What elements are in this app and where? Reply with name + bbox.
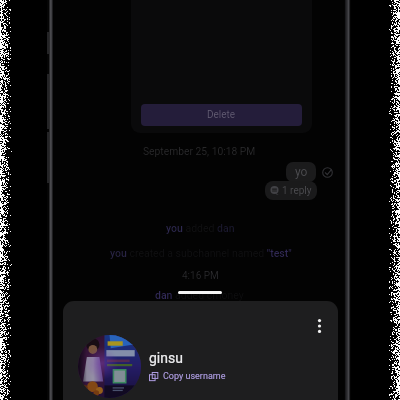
button[interactable]: More options — [308, 315, 330, 337]
staticText: Delete — [207, 109, 236, 121]
staticText: 1 reply — [282, 185, 312, 197]
button[interactable]: Delete — [141, 104, 302, 126]
staticText: dan added cmoney — [155, 289, 244, 301]
staticText: 4:16 PM — [182, 270, 219, 282]
staticText: you added dan — [166, 222, 235, 234]
button[interactable]: Sent — [322, 167, 333, 178]
button[interactable]: 1 reply — [265, 181, 317, 200]
staticText: you created a subchannel named "test" — [110, 247, 292, 259]
button[interactable]: yo — [286, 162, 316, 182]
staticText: ginsu — [149, 350, 183, 366]
button[interactable]: Copy username — [149, 371, 226, 382]
staticText: Copy username — [163, 371, 226, 382]
staticText: September 25, 10:18 PM — [143, 145, 256, 157]
staticText: yo — [295, 165, 308, 179]
